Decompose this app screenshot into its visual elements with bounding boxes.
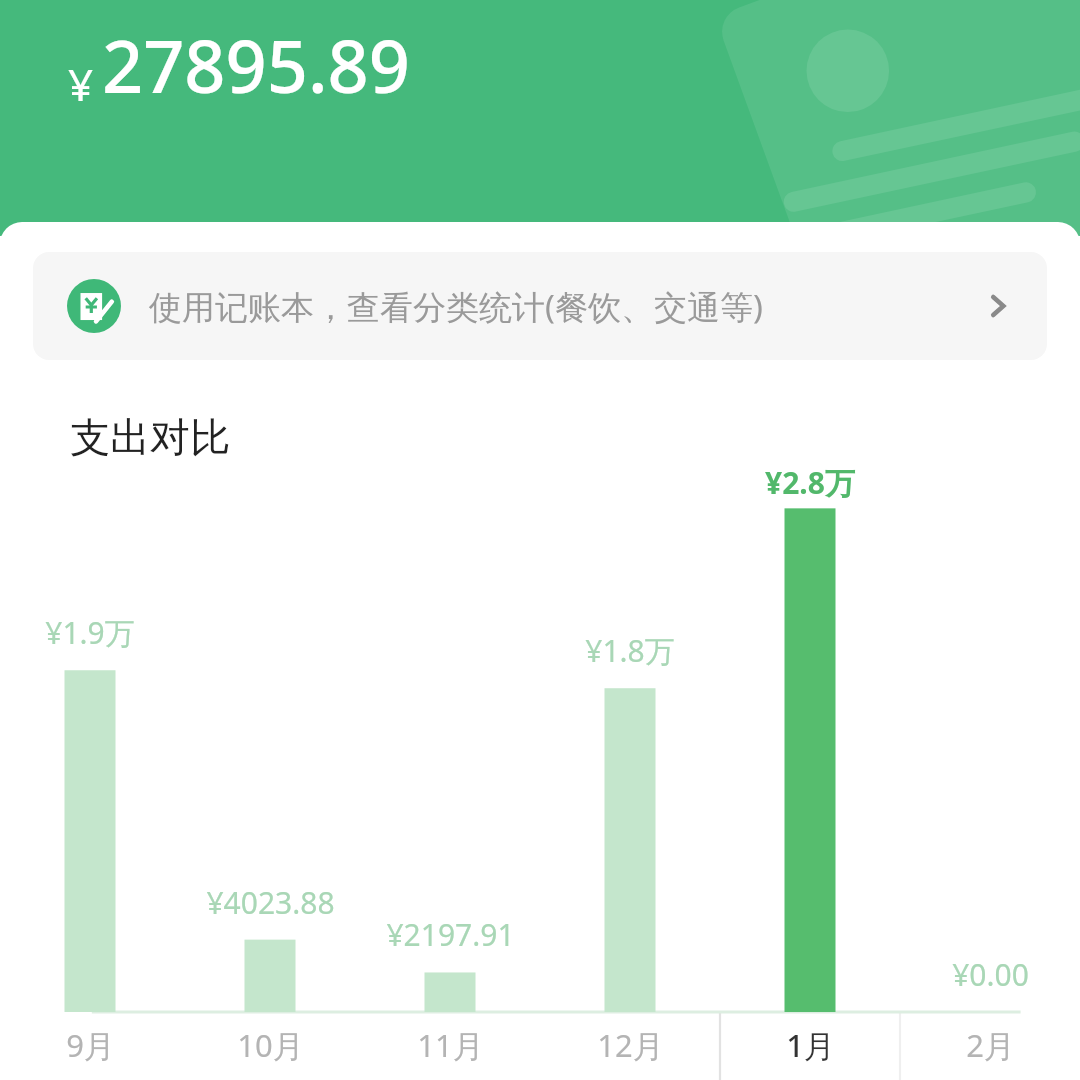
staticText: 10月 <box>237 1024 304 1066</box>
staticText: ¥1.8万 <box>585 630 675 671</box>
staticText: 9月 <box>66 1024 115 1066</box>
staticText: ¥0.00 <box>952 954 1029 995</box>
staticText: 27895.89 <box>102 16 410 114</box>
staticText: ¥2.8万 <box>765 462 855 503</box>
button[interactable]: 使用记账本，查看分类统计(餐饮、交通等) <box>33 252 1047 360</box>
staticText: ¥ <box>68 54 94 114</box>
staticText: 12月 <box>597 1024 664 1066</box>
staticText: ¥2197.91 <box>386 914 515 955</box>
staticText: 支出对比 <box>70 412 230 462</box>
staticText: 2月 <box>966 1024 1015 1066</box>
staticText: 11月 <box>417 1024 484 1066</box>
staticText: 使用记账本，查看分类统计(餐饮、交通等) <box>149 284 763 329</box>
staticText: ¥1.9万 <box>45 612 135 653</box>
staticText: 1月 <box>786 1024 835 1066</box>
staticText: ¥4023.88 <box>206 882 335 923</box>
